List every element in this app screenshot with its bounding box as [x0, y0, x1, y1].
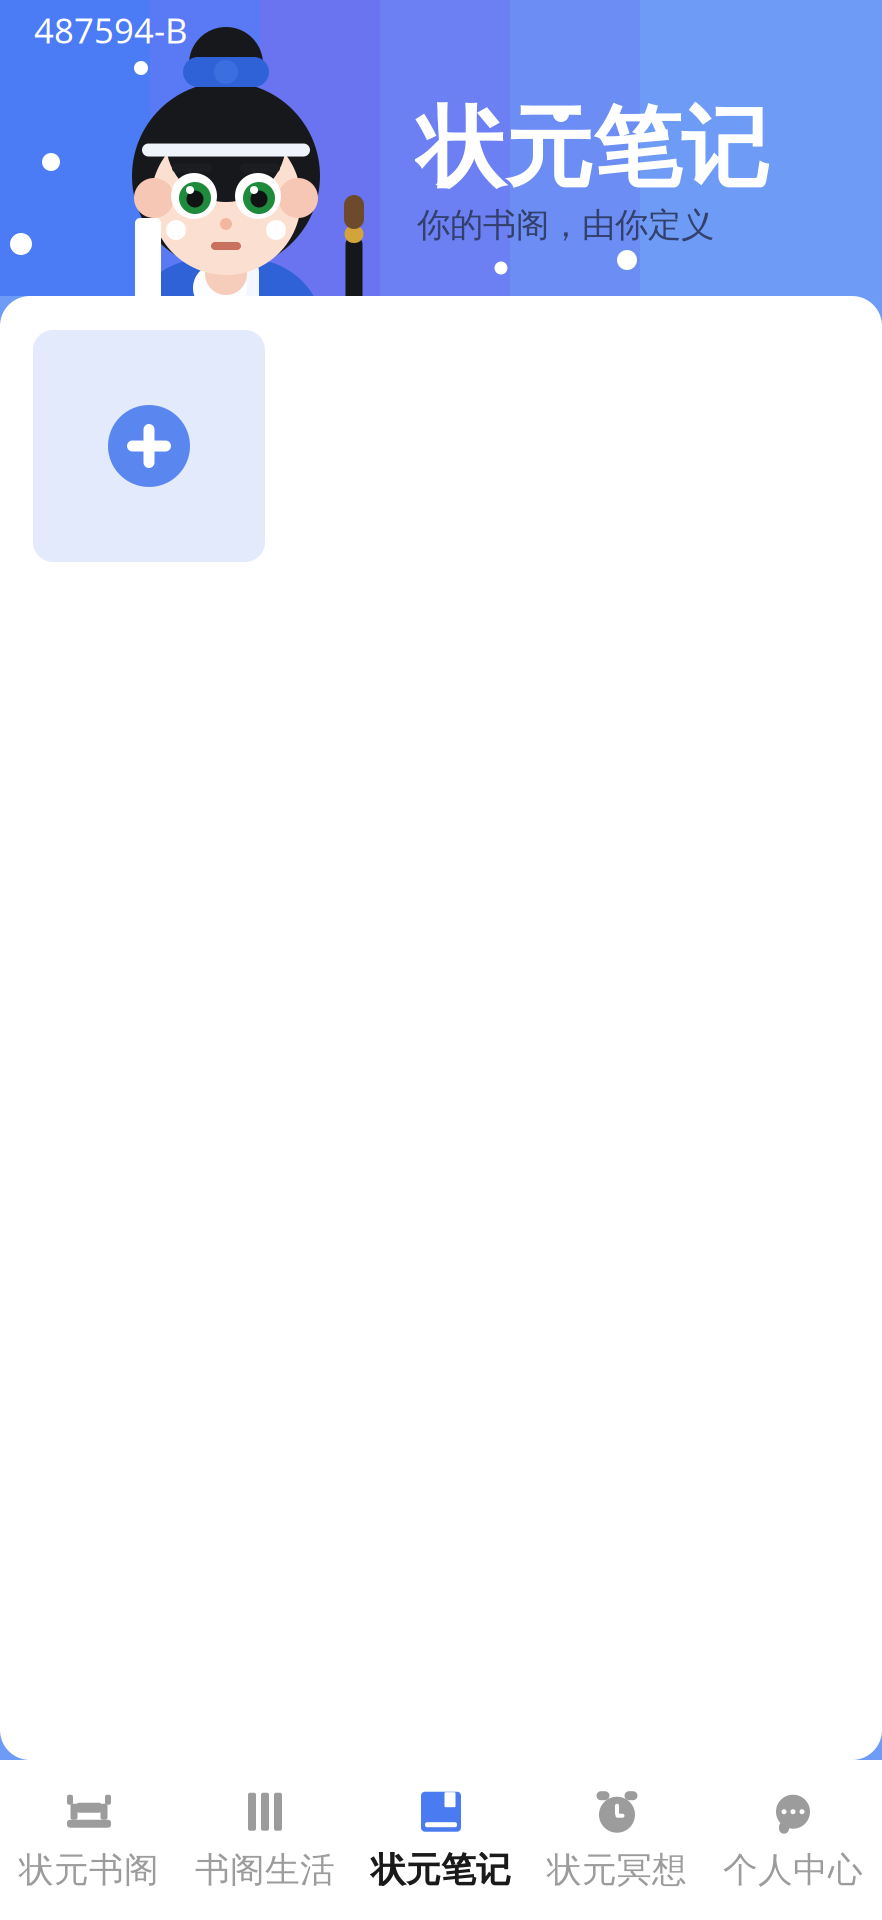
- staticText: 状元笔记: [417, 94, 769, 203]
- button[interactable]: 新建笔记: [33, 330, 265, 562]
- button[interactable]: 状元笔记: [353, 1760, 529, 1920]
- staticText: 书阁生活: [195, 1849, 335, 1891]
- staticText: 487594-B: [34, 7, 188, 53]
- staticText: 状元书阁: [19, 1849, 159, 1891]
- staticText: 状元冥想: [547, 1849, 687, 1891]
- button[interactable]: 书阁生活: [177, 1760, 353, 1920]
- staticText: 你的书阁，由你定义: [417, 205, 714, 245]
- button[interactable]: 状元冥想: [529, 1760, 705, 1920]
- button[interactable]: 状元书阁: [1, 1760, 177, 1920]
- button[interactable]: 个人中心: [705, 1760, 881, 1920]
- staticText: 个人中心: [723, 1849, 863, 1891]
- staticText: 状元笔记: [371, 1849, 511, 1891]
